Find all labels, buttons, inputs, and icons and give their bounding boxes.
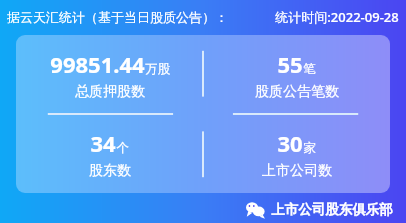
other: WeChat official account bbox=[246, 200, 265, 219]
staticText: 家 bbox=[303, 140, 316, 156]
staticText: 据云天汇统计（基于当日股质公告）： bbox=[7, 9, 228, 25]
staticText: 总质押股数 bbox=[75, 83, 145, 101]
staticText: 34 bbox=[90, 128, 116, 158]
button[interactable]: 99851.44 bbox=[16, 35, 203, 114]
button[interactable]: WeChat official account bbox=[246, 200, 393, 219]
staticText: 30 bbox=[277, 128, 303, 158]
button[interactable]: 55 bbox=[203, 35, 390, 114]
staticText: 统计时间:2022-09-28 bbox=[275, 8, 399, 26]
staticText: 股质公告笔数 bbox=[255, 83, 339, 101]
staticText: 上市公司数 bbox=[262, 162, 332, 180]
staticText: 55 bbox=[277, 49, 303, 79]
staticText: 99851.44 bbox=[50, 49, 145, 79]
button[interactable]: 34 bbox=[16, 114, 203, 193]
staticText: 股东数 bbox=[89, 162, 131, 180]
staticText: 笔 bbox=[303, 61, 316, 77]
staticText: 上市公司股东俱乐部 bbox=[271, 201, 393, 218]
button[interactable]: 30 bbox=[203, 114, 390, 193]
staticText: 个 bbox=[116, 140, 129, 156]
staticText: 万股 bbox=[145, 61, 170, 77]
